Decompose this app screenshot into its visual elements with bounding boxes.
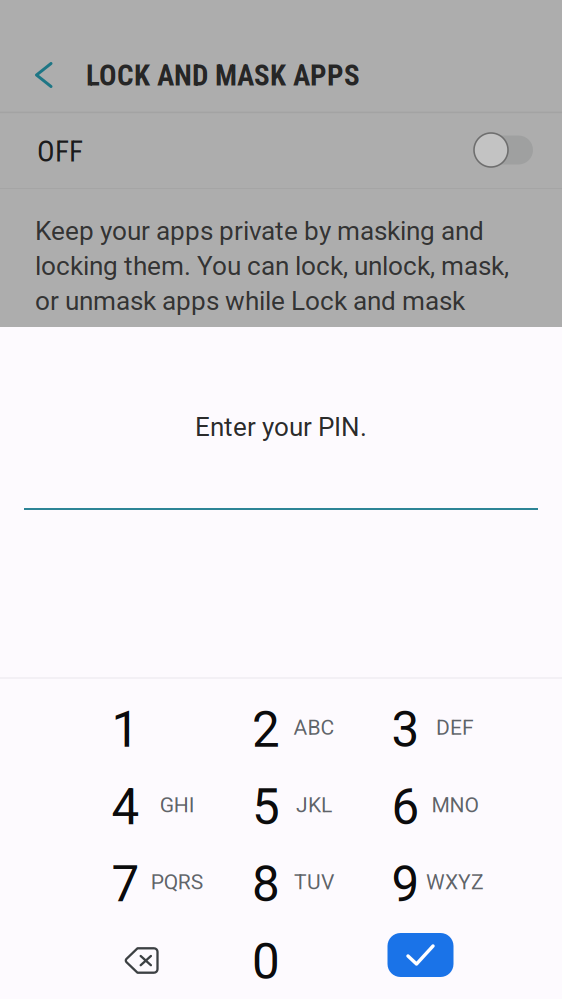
staticText: 3 [391, 701, 419, 759]
staticText: Enter your PIN. [195, 412, 367, 442]
staticText: ABC [293, 715, 334, 740]
button[interactable]: 1 [0, 690, 187, 767]
staticText: locking them. You can lock, unlock, mask… [35, 251, 509, 281]
staticText: PQRS [151, 870, 204, 894]
button[interactable]: Delete [48, 922, 235, 999]
button[interactable]: OFF [0, 114, 562, 188]
button[interactable]: Back [8, 37, 78, 113]
staticText: 4 [111, 779, 139, 836]
staticText: or unmask apps while Lock and mask [35, 286, 465, 316]
staticText: MNO [431, 793, 478, 817]
staticText: 7 [111, 856, 139, 913]
staticText: OFF [37, 134, 83, 169]
staticText: LOCK AND MASK APPS [86, 58, 360, 93]
staticText: 8 [252, 856, 280, 913]
button[interactable]: 9 [375, 844, 562, 921]
button[interactable]: 6 [375, 767, 562, 844]
staticText: TUV [294, 870, 334, 894]
staticText: Keep your apps private by masking and [35, 216, 484, 246]
staticText: 6 [391, 779, 419, 836]
staticText: JKL [296, 793, 332, 817]
button[interactable]: 7 [0, 844, 187, 921]
button[interactable]: 2 [187, 690, 374, 767]
button[interactable]: Confirm [327, 916, 514, 993]
button[interactable]: 5 [187, 767, 374, 844]
button[interactable]: 0 [187, 922, 374, 999]
button[interactable]: 3 [375, 690, 562, 767]
staticText: 5 [252, 779, 280, 836]
staticText: WXYZ [426, 870, 484, 894]
staticText: GHI [160, 793, 195, 817]
staticText: 1 [111, 701, 139, 759]
button[interactable]: 4 [0, 767, 187, 844]
staticText: 2 [252, 701, 280, 759]
button[interactable]: 8 [187, 844, 374, 921]
staticText: DEF [436, 715, 474, 740]
staticText: 0 [252, 933, 280, 991]
staticText: 9 [391, 856, 419, 913]
